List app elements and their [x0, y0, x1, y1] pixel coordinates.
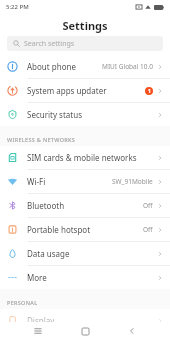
staticText: Portable hotspot [27, 224, 91, 235]
button[interactable]: Display [0, 309, 170, 332]
staticText: Settings [62, 18, 108, 33]
button[interactable]: System apps updater [0, 79, 170, 102]
staticText: Bluetooth [27, 200, 65, 211]
button[interactable]: Data usage [0, 242, 170, 265]
button[interactable]: Back [123, 322, 141, 340]
staticText: Off [143, 225, 153, 234]
button[interactable]: Home [76, 322, 94, 340]
staticText: 1 [148, 88, 151, 95]
staticText: PERSONAL [7, 299, 38, 306]
button[interactable]: Security status [0, 103, 170, 126]
staticText: Security status [27, 109, 82, 120]
staticText: About phone [27, 61, 76, 72]
button[interactable]: Recents [29, 322, 47, 340]
staticText: Wi-Fi [27, 176, 46, 187]
button[interactable]: Search settings [7, 36, 163, 51]
staticText: Data usage [27, 248, 70, 259]
button[interactable]: More [0, 266, 170, 289]
staticText: System apps updater [27, 85, 107, 96]
button[interactable]: Portable hotspot [0, 218, 170, 241]
button[interactable]: Bluetooth [0, 194, 170, 217]
staticText: 5:22 PM [6, 3, 29, 11]
staticText: More [27, 272, 47, 283]
button[interactable]: Wi-Fi [0, 170, 170, 193]
button[interactable]: About phone [0, 55, 170, 78]
staticText: Off [143, 201, 153, 210]
button[interactable]: SIM cards & mobile networks [0, 146, 170, 169]
staticText: SW_91Mobile [112, 177, 153, 186]
staticText: WIRELESS & NETWORKS [7, 136, 76, 143]
staticText: Search settings [24, 39, 75, 49]
staticText: SIM cards & mobile networks [27, 152, 137, 163]
staticText: Display [27, 315, 55, 326]
staticText: MIUI Global 10.0 [102, 62, 153, 71]
